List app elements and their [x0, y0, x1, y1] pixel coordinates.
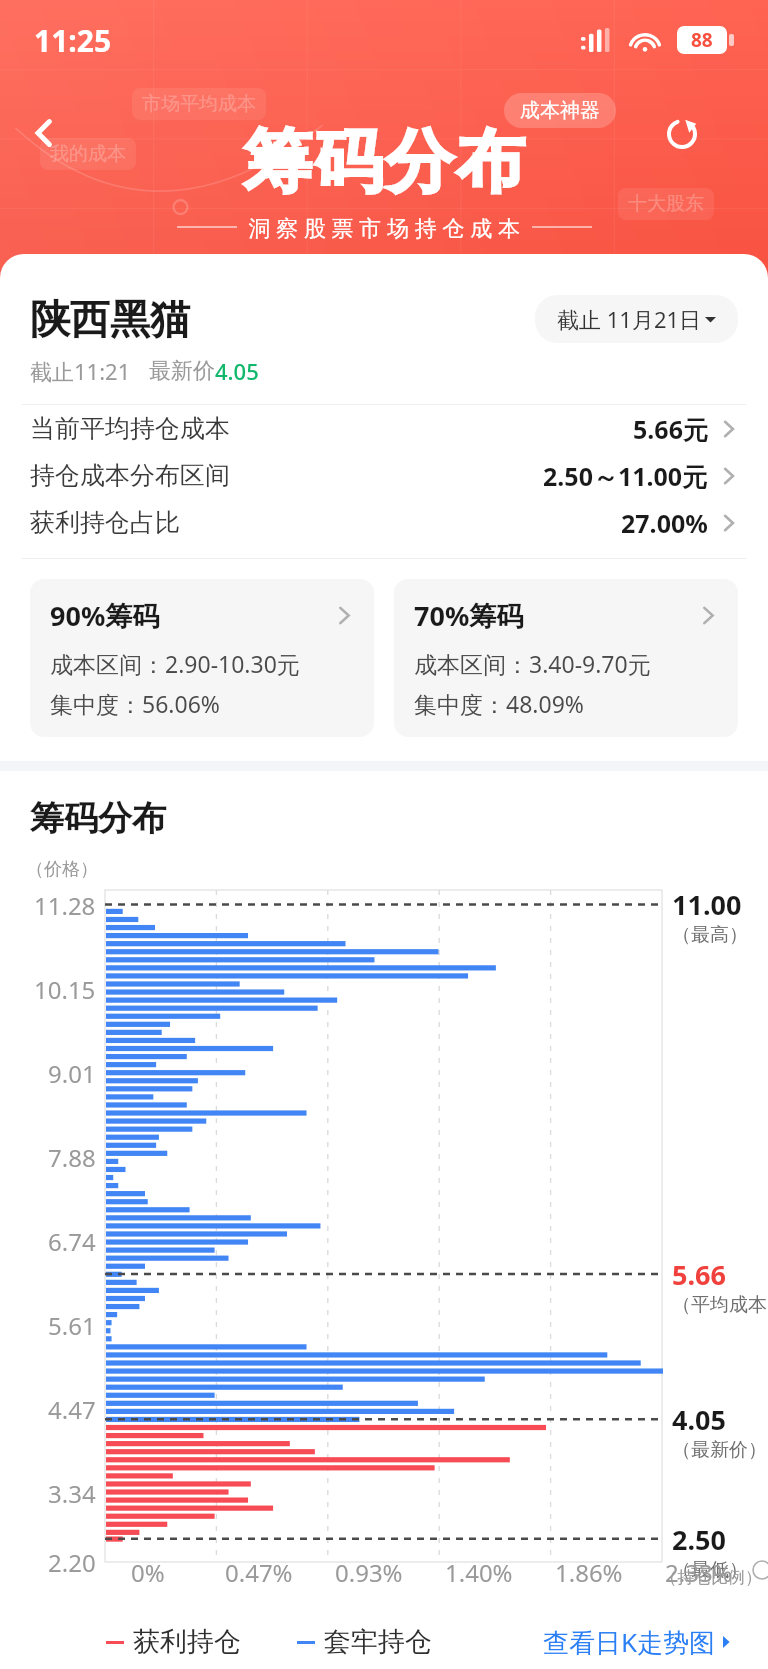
staticText: 截止 11月21日	[557, 304, 702, 334]
staticText: （持仓比例）	[660, 1567, 762, 1588]
staticText: 筹码分布	[30, 797, 166, 840]
button[interactable]: 90%筹码	[30, 579, 374, 737]
staticText: 7.88	[48, 1141, 96, 1174]
staticText: 成本区间：3.40-9.70元	[414, 648, 651, 679]
staticText: （最高）	[672, 923, 748, 947]
staticText: 1.40%	[445, 1556, 513, 1589]
staticText: 88	[691, 27, 713, 53]
staticText: 0.93%	[335, 1556, 403, 1589]
staticText: 4.47	[48, 1393, 96, 1426]
staticText: 筹码分布	[242, 120, 526, 206]
staticText: 27.00%	[621, 506, 708, 540]
staticText: 成本神器	[520, 98, 600, 123]
staticText: 最新价	[149, 357, 215, 385]
staticText: 十大股东	[628, 192, 704, 216]
staticText: （最低）	[672, 1558, 748, 1582]
staticText: 陕西黑猫	[30, 294, 190, 344]
button[interactable]: 查看日K走势图	[543, 1624, 732, 1660]
staticText: 5.66元	[633, 412, 708, 446]
staticText: 11:25	[34, 20, 112, 61]
staticText: 截止11:21	[30, 356, 131, 386]
staticText: 市场平均成本	[142, 92, 256, 116]
button[interactable]: Refresh	[652, 104, 712, 164]
button[interactable]: 截止 11月21日	[557, 304, 716, 334]
staticText: 查看日K走势图	[543, 1624, 716, 1660]
staticText: 0%	[131, 1556, 165, 1589]
staticText: 集中度：56.06%	[50, 688, 220, 719]
staticText: 集中度：48.09%	[414, 688, 584, 719]
staticText: 5.61	[48, 1309, 96, 1342]
staticText: （平均成本）	[672, 1293, 768, 1317]
staticText: 9.01	[48, 1057, 96, 1090]
staticText: 11.00	[672, 886, 742, 923]
staticText: 5.66	[672, 1256, 726, 1293]
staticText: 1.86%	[555, 1556, 623, 1589]
staticText: 洞 察 股 票 市 场 持 仓 成 本	[237, 212, 532, 242]
staticText: 套牢持仓	[324, 1625, 432, 1659]
button[interactable]: 获利持仓占比	[0, 499, 768, 546]
staticText: 3.34	[48, 1477, 96, 1510]
staticText: 获利持仓	[133, 1625, 241, 1659]
staticText: 成本区间：2.90-10.30元	[50, 648, 300, 679]
staticText: 70%筹码	[414, 597, 524, 634]
staticText: 11.28	[34, 889, 96, 922]
staticText: 获利持仓占比	[30, 507, 180, 538]
button[interactable]: 70%筹码	[394, 579, 738, 737]
button[interactable]: Back	[16, 105, 72, 161]
staticText: 持仓成本分布区间	[30, 460, 230, 491]
staticText: 6.74	[48, 1225, 96, 1258]
staticText: （最新价）	[672, 1438, 767, 1462]
staticText: 2.33%	[665, 1556, 733, 1589]
button[interactable]: 当前平均持仓成本	[0, 405, 768, 452]
staticText: （价格）	[26, 858, 98, 881]
staticText: 2.50	[672, 1521, 726, 1558]
staticText: 2.20	[48, 1546, 96, 1579]
staticText: 10.15	[34, 973, 96, 1006]
staticText: 当前平均持仓成本	[30, 413, 230, 444]
staticText: 4.05	[672, 1401, 726, 1438]
button[interactable]: 成本神器	[520, 98, 600, 123]
staticText: 2.50～11.00元	[543, 459, 708, 493]
staticText: 4.05	[215, 356, 259, 386]
other: Help	[752, 1560, 768, 1580]
staticText: 0.47%	[225, 1556, 293, 1589]
button[interactable]: 持仓成本分布区间	[0, 452, 768, 499]
staticText: 90%筹码	[50, 597, 160, 634]
staticText: 我的成本	[50, 142, 126, 166]
